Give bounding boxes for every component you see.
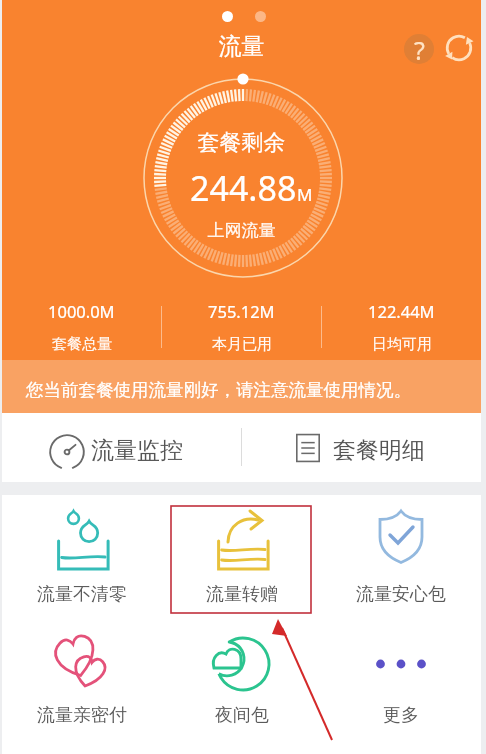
staticText: 套餐剩余 <box>2 129 481 157</box>
staticText: 夜间包 <box>162 704 322 727</box>
staticText: 日均可用 <box>372 335 432 354</box>
staticText: 流量监控 <box>91 436 183 465</box>
staticText: 上网流量 <box>2 220 481 241</box>
staticText: 套餐明细 <box>333 436 425 465</box>
button[interactable]: 夜间包 <box>162 616 322 737</box>
staticText: 更多 <box>321 704 481 727</box>
staticText: 套餐总量 <box>52 335 112 354</box>
staticText: 122.44M <box>368 300 435 322</box>
staticText: 1000.0M <box>48 300 115 322</box>
button[interactable]: 流量安心包 <box>321 495 481 616</box>
staticText: M <box>297 183 313 206</box>
staticText: 本月已用 <box>212 335 272 354</box>
staticText: 您当前套餐使用流量刚好，请注意流量使用情况。 <box>26 379 411 401</box>
button[interactable]: Help <box>404 34 434 64</box>
staticText: ? <box>414 34 425 63</box>
button[interactable]: 流量监控 <box>2 413 241 482</box>
staticText: 755.12M <box>208 300 275 322</box>
button[interactable]: 流量不清零 <box>2 495 162 616</box>
staticText: 流量安心包 <box>321 583 481 606</box>
button[interactable]: 套餐明细 <box>242 413 481 482</box>
button[interactable]: 更多 <box>321 616 481 737</box>
staticText: 流量不清零 <box>2 583 162 606</box>
staticText: 244.88 <box>190 165 297 211</box>
button[interactable]: Refresh <box>444 33 474 63</box>
staticText: 流量 <box>2 32 481 61</box>
staticText: 流量转赠 <box>162 583 322 606</box>
button[interactable]: 流量转赠 <box>162 495 322 616</box>
button[interactable]: 流量亲密付 <box>2 616 162 737</box>
staticText: 流量亲密付 <box>2 704 162 727</box>
